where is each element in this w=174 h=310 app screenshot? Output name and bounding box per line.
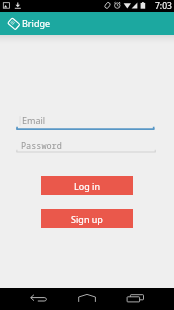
staticText: Log in: [74, 180, 100, 192]
staticText: Bridge: [22, 17, 51, 29]
staticText: Sign up: [71, 213, 103, 225]
button[interactable]: Email: [0, 111, 174, 134]
button[interactable]: Log in: [41, 176, 133, 195]
button[interactable]: Back: [24, 288, 52, 310]
staticText: Password: [21, 140, 62, 152]
button[interactable]: Sign up: [41, 209, 133, 228]
staticText: 7:03: [155, 0, 172, 12]
staticText: Email: [22, 114, 46, 126]
button[interactable]: Bridge: [0, 0, 174, 35]
button[interactable]: Home: [73, 288, 101, 310]
button[interactable]: Password: [0, 135, 174, 157]
button[interactable]: Recent apps: [122, 288, 150, 310]
